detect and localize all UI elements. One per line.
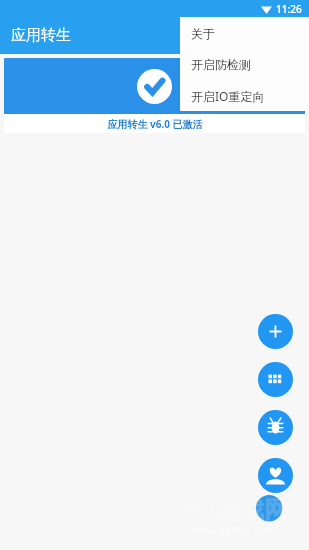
button[interactable]: 应用转生 v6.0 已激活 [4, 58, 305, 133]
staticText: 应用转生 [11, 26, 71, 45]
button[interactable]: 关于 [180, 17, 309, 49]
button[interactable]: 开启防检测 [180, 49, 309, 80]
button[interactable]: All apps [258, 362, 293, 397]
button[interactable]: 开启IO重定向 [180, 80, 309, 111]
staticText: 11:26 [276, 2, 302, 16]
button[interactable]: Donate [258, 458, 293, 493]
button[interactable]: Add [258, 314, 293, 349]
staticText: 应用转生 v6.0 已激活 [107, 117, 203, 131]
staticText: 关于 [191, 26, 215, 41]
button[interactable]: Debug [258, 410, 293, 445]
staticText: 开启IO重定向 [191, 88, 265, 104]
staticText: 007游戏网 [175, 492, 289, 522]
staticText: 开启防检测 [191, 57, 251, 72]
